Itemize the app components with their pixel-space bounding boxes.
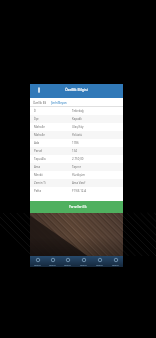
staticText: 1786	[72, 141, 79, 145]
staticText: 2.750,00	[72, 157, 84, 161]
button[interactable]: Parselleri Ek	[30, 201, 123, 213]
staticText: Özellik Bilgisi	[65, 87, 88, 92]
staticText: Menü	[96, 263, 103, 266]
button[interactable]: Tab 5	[107, 256, 123, 267]
staticText: Tapu Ala	[34, 157, 72, 161]
staticText: Yüzölçüm	[72, 173, 86, 177]
staticText: Yolüstü	[72, 133, 82, 137]
staticText: Şerh/Beyan	[51, 101, 67, 105]
staticText: Tekirdağ	[72, 109, 84, 113]
staticText: Menü	[80, 263, 87, 266]
button[interactable]: Back	[35, 83, 43, 97]
staticText: Taşınır	[72, 165, 81, 169]
button[interactable]: Şerh/Beyan	[50, 98, 68, 107]
button[interactable]: İl	[30, 107, 123, 115]
staticText: Menü	[112, 263, 119, 266]
staticText: Parsel	[34, 149, 72, 153]
button[interactable]: Mahalle	[30, 123, 123, 131]
button[interactable]: İlçe	[30, 115, 123, 123]
staticText: İlçe	[34, 117, 72, 121]
button[interactable]: Pafta	[30, 187, 123, 195]
button[interactable]: Tapu Ala	[30, 155, 123, 163]
button[interactable]: Tab 4	[91, 256, 107, 267]
button[interactable]: Ada	[30, 139, 123, 147]
button[interactable]: Zemin Ti	[30, 179, 123, 187]
button[interactable]: Mevkii	[30, 171, 123, 179]
staticText: Zemin Ti	[34, 181, 72, 185]
button[interactable]: Arsa	[30, 163, 123, 171]
button[interactable]: Tab 3	[75, 256, 91, 267]
staticText: Arsa Vasıf	[72, 181, 86, 185]
staticText: 134	[72, 149, 77, 153]
button[interactable]: Tab 1	[45, 256, 60, 267]
staticText: F19.B.12.A	[72, 189, 87, 193]
staticText: İl	[34, 109, 72, 113]
button[interactable]: Özellik Bil	[30, 98, 50, 107]
button[interactable]: Tab 0	[30, 256, 45, 267]
button[interactable]: Mahalle	[30, 131, 123, 139]
staticText: Menü	[34, 263, 41, 266]
staticText: Menü	[64, 263, 71, 266]
button[interactable]: Tab 2	[60, 256, 75, 267]
staticText: Parselleri Ek	[69, 205, 87, 209]
staticText: Mevkii	[34, 173, 72, 177]
staticText: Menü	[49, 263, 56, 266]
staticText: Arsa	[34, 165, 72, 169]
staticText: Ada	[34, 141, 72, 145]
button[interactable]: Parsel	[30, 147, 123, 155]
staticText: Ulaş Köy	[72, 125, 84, 129]
staticText: Mahalle	[34, 125, 72, 129]
staticText: Özellik Bil	[33, 101, 47, 105]
staticText: Mahalle	[34, 133, 72, 137]
staticText: Pafta	[34, 189, 72, 193]
staticText: Kapaklı	[72, 117, 82, 121]
